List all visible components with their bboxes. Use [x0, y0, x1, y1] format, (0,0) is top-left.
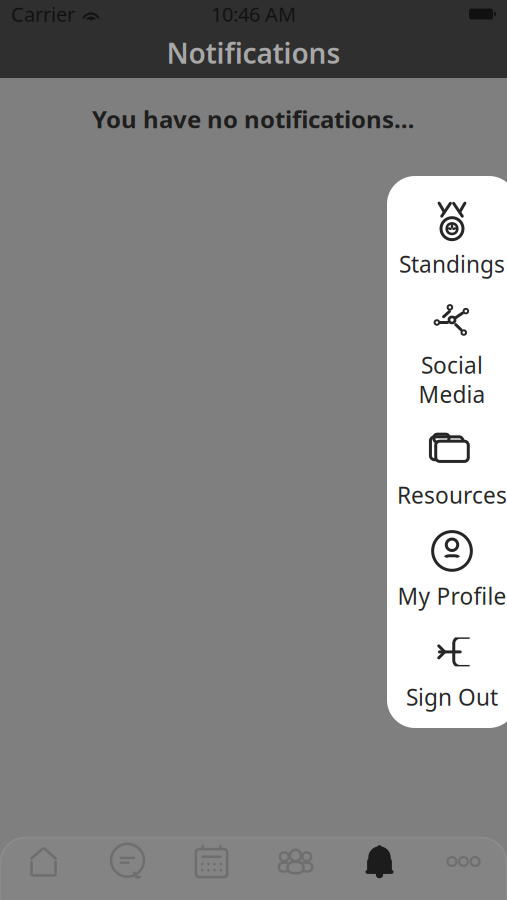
button[interactable]: More [421, 837, 505, 900]
staticText: Standings [399, 249, 505, 279]
button[interactable]: Messages [85, 837, 169, 900]
button[interactable]: Sign Out [392, 627, 507, 714]
button[interactable]: Home [1, 837, 85, 900]
button[interactable]: Calendar [169, 837, 253, 900]
button[interactable]: Standings [392, 194, 507, 281]
button[interactable]: Social [392, 295, 507, 411]
button[interactable]: Notifications [337, 837, 421, 900]
staticText: Sign Out [406, 682, 498, 712]
staticText: Notifications [166, 34, 340, 72]
staticText: My Profile [397, 581, 506, 611]
button[interactable]: My Profile [392, 526, 507, 613]
staticText: Resources [397, 480, 507, 510]
button[interactable]: Resources [392, 425, 507, 512]
staticText: Media [418, 379, 485, 409]
staticText: Carrier [11, 1, 75, 27]
staticText: Social [421, 350, 483, 380]
button[interactable]: Teams [253, 837, 337, 900]
staticText: You have no notifications… [92, 103, 415, 135]
staticText: 10:46 AM [211, 1, 296, 27]
